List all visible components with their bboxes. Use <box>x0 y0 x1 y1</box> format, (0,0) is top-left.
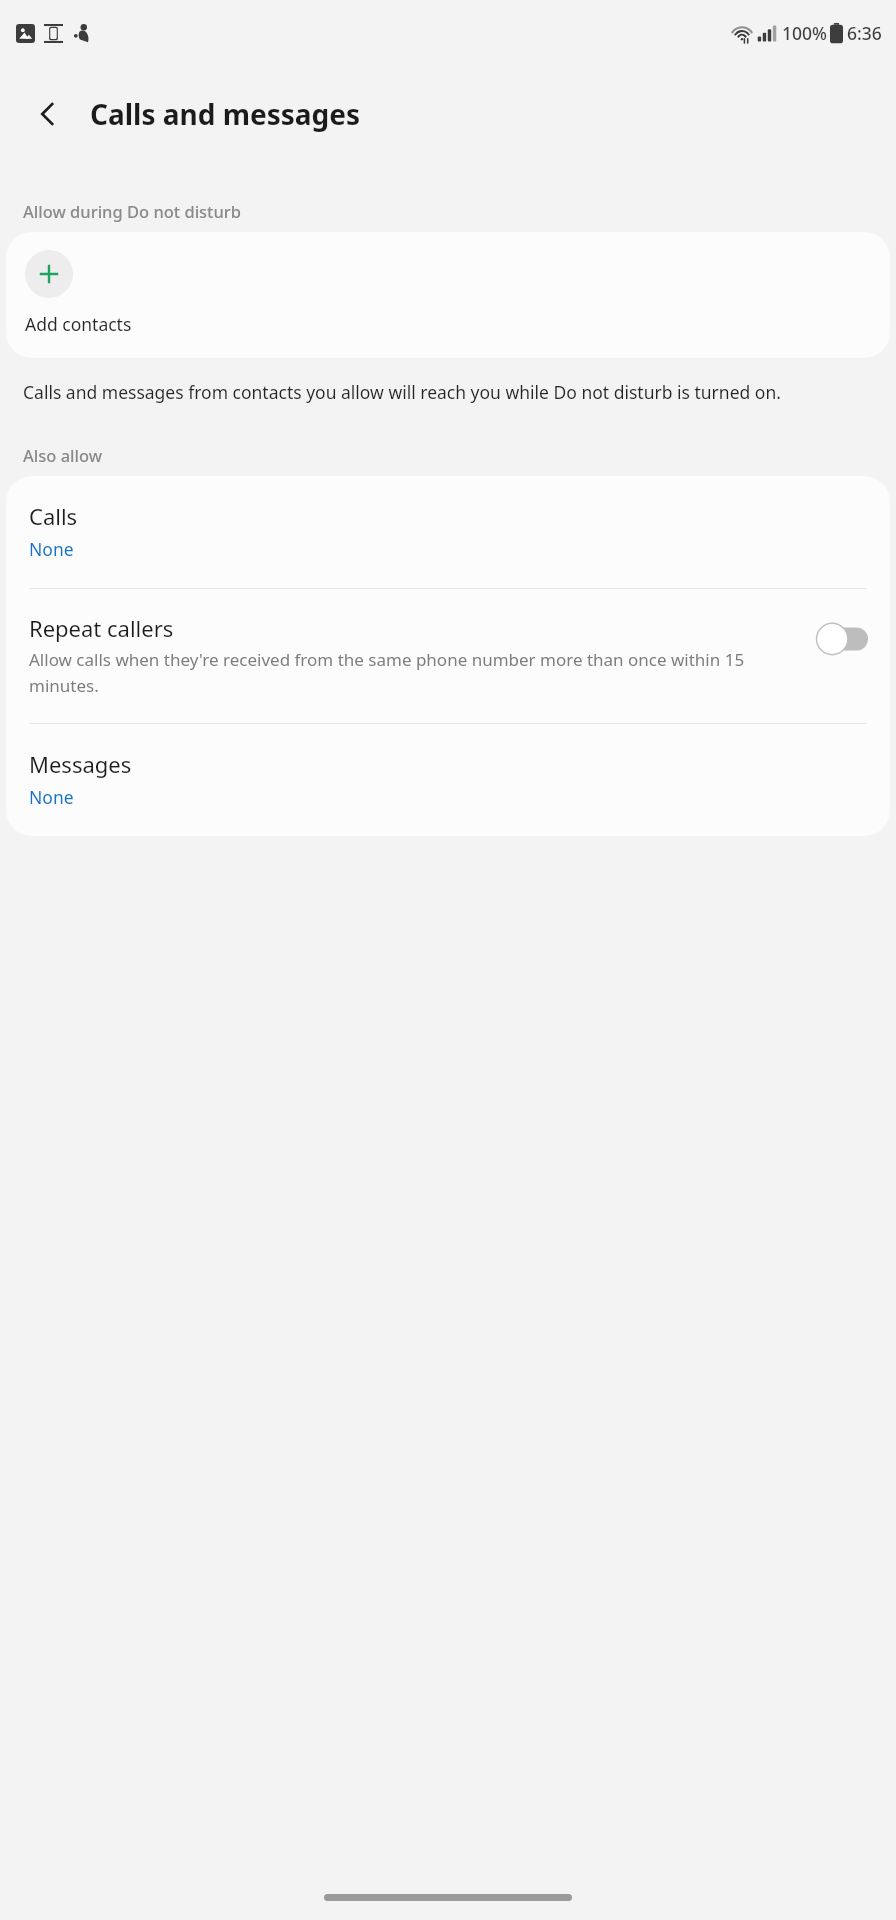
staticText: Messages <box>29 749 132 779</box>
staticText: Calls <box>29 501 78 531</box>
staticText: None <box>29 537 74 561</box>
button[interactable]: Calls <box>6 476 890 588</box>
staticText: Calls and messages <box>90 95 361 133</box>
staticText: Calls and messages from contacts you all… <box>23 380 781 404</box>
button[interactable]: Messages <box>6 724 890 836</box>
button[interactable]: Add contacts <box>25 250 73 298</box>
button[interactable]: Repeat callers <box>6 589 890 723</box>
staticText: 6:36 <box>847 21 882 45</box>
button[interactable]: Repeat callers toggle, off <box>816 623 868 655</box>
staticText: Allow calls when they're received from t… <box>29 648 800 697</box>
staticText: Add contacts <box>25 312 132 336</box>
staticText: None <box>29 785 74 809</box>
staticText: Also allow <box>23 444 103 466</box>
staticText: 100% <box>782 21 827 45</box>
button[interactable]: Navigate up <box>22 88 74 140</box>
staticText: Repeat callers <box>29 613 174 643</box>
staticText: Allow during Do not disturb <box>23 200 241 222</box>
